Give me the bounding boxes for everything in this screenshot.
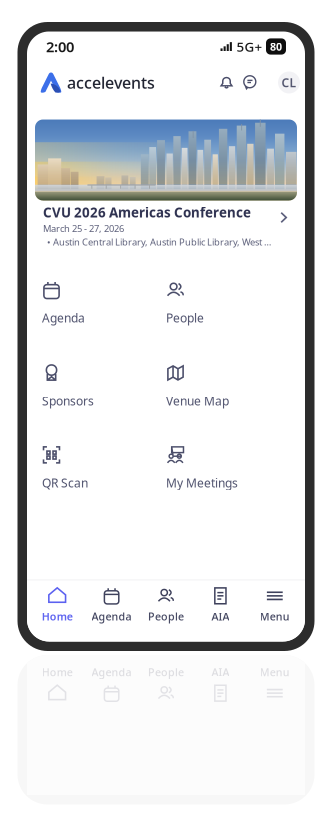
button[interactable]: Menu [248, 586, 302, 623]
staticText: AIA [211, 665, 229, 679]
staticText: People [166, 310, 204, 326]
staticText: Home [42, 609, 73, 623]
button[interactable]: People [139, 586, 193, 623]
staticText: accelevents [67, 72, 155, 93]
button[interactable]: QR Scan [42, 445, 166, 491]
button[interactable]: Profile [278, 71, 300, 93]
staticText: My Meetings [166, 475, 238, 491]
staticText: Venue Map [166, 393, 229, 409]
button[interactable]: Notifications [216, 72, 237, 93]
button[interactable]: My Meetings [166, 445, 290, 491]
staticText: Home [42, 665, 73, 679]
staticText: CL [281, 74, 296, 90]
staticText: 2:00 [46, 37, 74, 56]
button[interactable]: Sponsors [42, 363, 166, 409]
button[interactable]: CVU 2026 Americas Conference [35, 119, 297, 257]
staticText: AIA [211, 609, 229, 623]
staticText: 5G+ [236, 38, 262, 55]
staticText: QR Scan [42, 475, 88, 491]
button[interactable]: Messages [239, 72, 260, 93]
staticText: Sponsors [42, 393, 94, 409]
button[interactable]: Agenda [42, 280, 166, 326]
button[interactable]: Home [30, 586, 84, 623]
staticText: CVU 2026 Americas Conference [43, 203, 251, 221]
button[interactable]: People [166, 280, 290, 326]
staticText: Agenda [42, 310, 85, 326]
staticText: March 25 - 27, 2026 [43, 222, 124, 235]
staticText: People [148, 665, 184, 679]
staticText: People [148, 609, 184, 623]
button[interactable]: AIA [193, 586, 248, 623]
staticText: 80 [270, 39, 282, 54]
staticText: Menu [260, 609, 290, 623]
staticText: Menu [260, 665, 290, 679]
staticText: Agenda [92, 665, 132, 679]
button[interactable]: Agenda [84, 586, 139, 623]
staticText: Agenda [92, 609, 132, 623]
button[interactable]: Venue Map [166, 363, 290, 409]
staticText: • Austin Central Library, Austin Public … [47, 236, 272, 248]
